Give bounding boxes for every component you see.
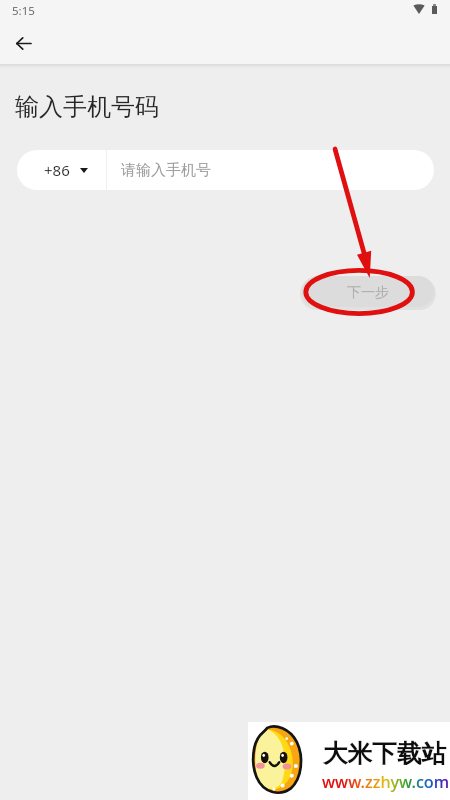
button[interactable]: +86 [17, 150, 106, 190]
staticText: 输入手机号码 [15, 92, 159, 122]
button[interactable]: Back [3, 23, 43, 63]
staticText: +86 [44, 160, 70, 180]
staticText: 下一步 [347, 284, 389, 302]
staticText: 5:15 [12, 3, 35, 19]
button[interactable]: 下一步 [302, 276, 434, 307]
staticText: www.zzhyw.com [322, 771, 450, 793]
staticText: 大米下载站 [323, 738, 446, 769]
staticText: 请输入手机号 [121, 161, 211, 180]
